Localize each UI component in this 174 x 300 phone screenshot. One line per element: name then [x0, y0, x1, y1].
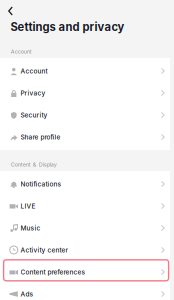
button[interactable]: Back [5, 3, 16, 19]
staticText: LIVE [21, 202, 36, 210]
staticText: Account [11, 48, 32, 55]
staticText: Share profile [21, 133, 61, 141]
button[interactable]: LIVE [0, 195, 170, 217]
staticText: Content & Display [11, 161, 57, 168]
button[interactable]: Activity center [0, 239, 170, 261]
button[interactable]: Ads [0, 283, 170, 300]
staticText: Account [21, 67, 48, 75]
button[interactable]: Share profile [0, 126, 170, 148]
button[interactable]: Notifications [0, 173, 170, 195]
staticText: Content preferences [21, 268, 86, 276]
staticText: Security [21, 111, 48, 119]
staticText: Music [21, 224, 41, 232]
button[interactable]: Content preferences [0, 261, 170, 283]
button[interactable]: Music [0, 217, 170, 239]
staticText: Privacy [21, 89, 46, 97]
button[interactable]: Privacy [0, 82, 170, 104]
staticText: Activity center [21, 246, 69, 254]
button[interactable]: Account [0, 60, 170, 82]
button[interactable]: Security [0, 104, 170, 126]
staticText: Notifications [21, 180, 62, 188]
staticText: Settings and privacy [11, 20, 125, 34]
staticText: Ads [21, 290, 34, 298]
